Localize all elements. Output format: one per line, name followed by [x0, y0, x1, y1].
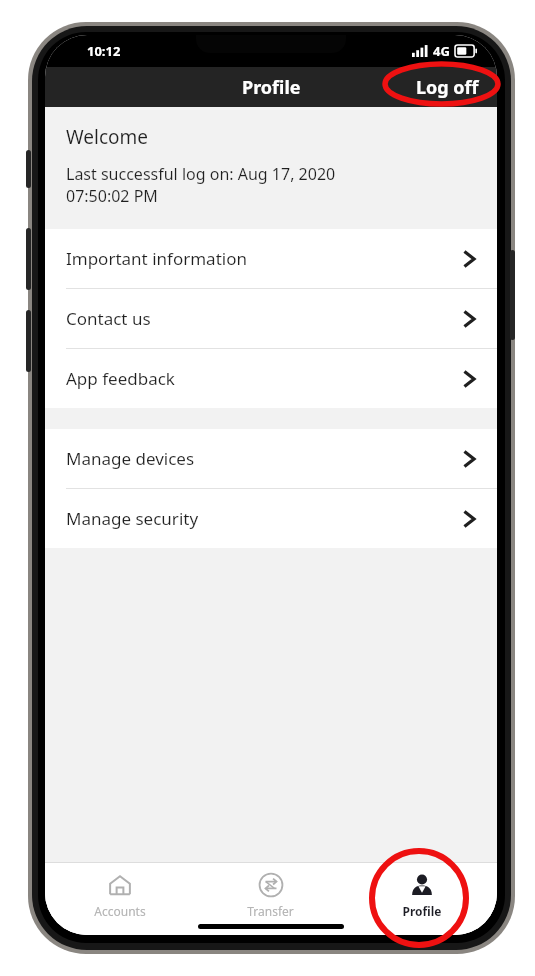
staticText: Accounts: [94, 903, 146, 919]
staticText: Last successful log on: Aug 17, 2020 07:…: [66, 163, 336, 207]
button[interactable]: Profile: [346, 863, 497, 919]
staticText: Log off: [416, 75, 479, 100]
button[interactable]: Contact us: [45, 289, 497, 348]
staticText: Important information: [66, 247, 463, 270]
staticText: App feedback: [66, 367, 463, 390]
button[interactable]: Manage security: [45, 489, 497, 548]
button[interactable]: Important information: [45, 229, 497, 288]
button[interactable]: Manage devices: [45, 429, 497, 488]
staticText: Transfer: [247, 903, 294, 919]
button[interactable]: Transfer: [195, 863, 346, 919]
staticText: Manage security: [66, 507, 463, 530]
staticText: Contact us: [66, 307, 463, 330]
button[interactable]: App feedback: [45, 349, 497, 408]
staticText: Manage devices: [66, 447, 463, 470]
staticText: Welcome: [66, 124, 149, 150]
staticText: Profile: [242, 75, 301, 100]
staticText: 4G: [433, 42, 450, 60]
button[interactable]: Accounts: [45, 863, 195, 919]
staticText: 10:12: [87, 42, 121, 60]
staticText: Profile: [402, 903, 442, 919]
button[interactable]: Log off: [408, 71, 487, 104]
